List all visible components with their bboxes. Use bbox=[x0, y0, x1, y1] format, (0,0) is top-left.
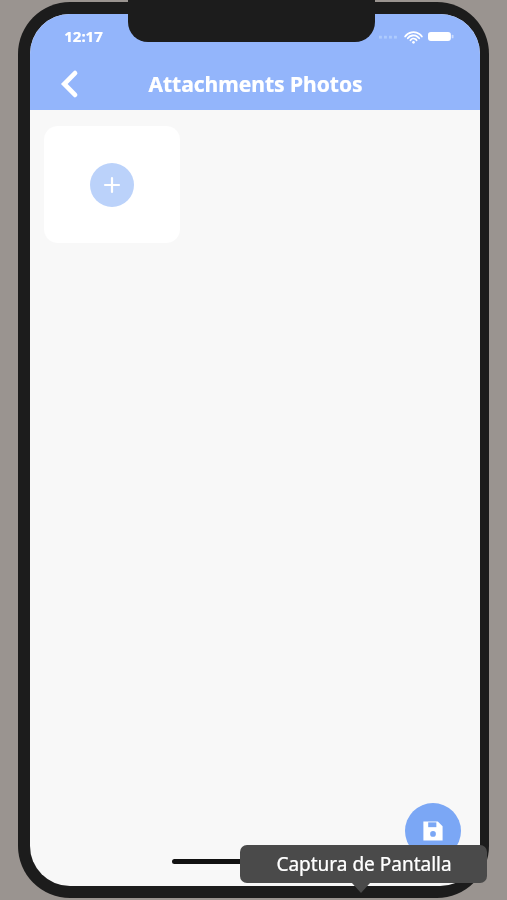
staticText: 12:17 bbox=[64, 26, 103, 46]
button[interactable]: Save bbox=[405, 803, 461, 859]
staticText: Attachments Photos bbox=[148, 70, 363, 99]
staticText: Captura de Pantalla bbox=[276, 851, 452, 877]
button[interactable]: Add photo bbox=[44, 126, 180, 243]
button[interactable]: Back bbox=[48, 62, 92, 106]
